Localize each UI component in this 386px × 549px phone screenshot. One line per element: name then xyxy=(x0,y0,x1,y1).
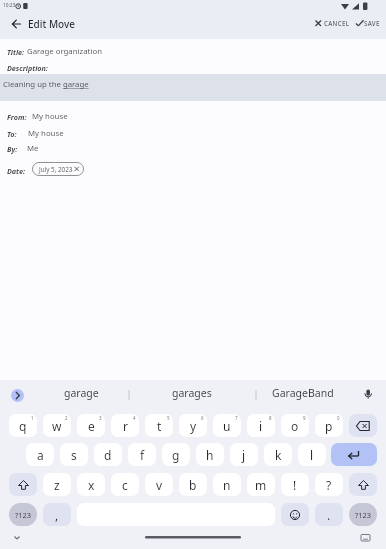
staticText: 2 xyxy=(65,415,68,421)
staticText: 3 xyxy=(99,415,102,421)
staticText: . xyxy=(327,507,331,523)
staticText: , xyxy=(55,507,59,523)
button[interactable]: y xyxy=(179,414,207,437)
staticText: r xyxy=(123,418,128,434)
button[interactable]: b xyxy=(179,473,207,496)
staticText: Cleaning up the garage xyxy=(3,79,89,90)
button[interactable] xyxy=(11,389,24,402)
button[interactable]: j xyxy=(230,443,258,466)
button[interactable]: July 5, 2023 xyxy=(32,162,84,176)
button[interactable]: g xyxy=(162,443,190,466)
button[interactable]: h xyxy=(196,443,224,466)
button[interactable]: f xyxy=(128,443,156,466)
staticText: Date: xyxy=(7,166,26,176)
staticText: July 5, 2023 xyxy=(39,165,73,174)
button[interactable]: ?123 xyxy=(349,503,377,526)
button[interactable] xyxy=(331,443,377,466)
staticText: e xyxy=(88,418,95,434)
staticText: garages xyxy=(172,386,212,400)
button[interactable] xyxy=(349,473,377,496)
staticText: Title: xyxy=(7,47,25,57)
button[interactable]: d xyxy=(94,443,122,466)
staticText: o xyxy=(291,418,299,434)
staticText: ?123 xyxy=(15,510,32,520)
staticText: 7 xyxy=(235,415,238,421)
staticText: ? xyxy=(326,477,332,493)
button[interactable]: i xyxy=(247,414,275,437)
button[interactable]: x xyxy=(77,473,105,496)
button[interactable]: k xyxy=(264,443,292,466)
button[interactable] xyxy=(8,14,28,34)
staticText: d xyxy=(104,447,112,463)
staticText: SAVE xyxy=(364,19,380,27)
button[interactable]: garage xyxy=(21,380,141,406)
button[interactable]: p xyxy=(315,414,343,437)
staticText: CANCEL xyxy=(324,19,350,27)
staticText: z xyxy=(54,477,60,493)
button[interactable] xyxy=(281,503,309,526)
button[interactable]: r xyxy=(111,414,139,437)
button[interactable]: m xyxy=(247,473,275,496)
staticText: 5 xyxy=(167,415,170,421)
staticText: 1 xyxy=(31,415,34,421)
button[interactable]: s xyxy=(60,443,88,466)
staticText: h xyxy=(206,447,214,463)
staticText: l xyxy=(310,447,314,463)
button[interactable]: SAVE xyxy=(352,17,368,25)
button[interactable]: ?123 xyxy=(9,503,37,526)
staticText: Garage organization xyxy=(27,46,102,57)
staticText: My house xyxy=(32,111,68,122)
staticText: a xyxy=(37,447,44,463)
button[interactable]: u xyxy=(213,414,241,437)
staticText: 8 xyxy=(269,415,272,421)
staticText: 9 xyxy=(303,415,306,421)
staticText: From: xyxy=(7,112,27,122)
staticText: w xyxy=(52,418,62,434)
button[interactable]: o xyxy=(281,414,309,437)
staticText: ! xyxy=(293,477,297,493)
button[interactable]: w xyxy=(43,414,71,437)
button[interactable]: v xyxy=(145,473,173,496)
staticText: 0 xyxy=(337,415,340,421)
staticText: garage xyxy=(64,386,99,400)
button[interactable]: q xyxy=(9,414,37,437)
button[interactable] xyxy=(349,414,377,437)
staticText: Description: xyxy=(7,63,48,73)
button[interactable]: c xyxy=(111,473,139,496)
staticText: ?123 xyxy=(355,510,372,520)
staticText: u xyxy=(223,418,231,434)
staticText: My house xyxy=(28,128,64,139)
staticText: c xyxy=(122,477,128,493)
staticText: By: xyxy=(7,144,18,154)
button[interactable]: . xyxy=(315,503,343,526)
staticText: y xyxy=(190,418,197,434)
button[interactable]: e xyxy=(77,414,105,437)
staticText: b xyxy=(189,477,197,493)
button[interactable]: ! xyxy=(281,473,309,496)
staticText: m xyxy=(255,477,267,493)
staticText: k xyxy=(275,447,282,463)
staticText: g xyxy=(172,447,180,463)
button[interactable]: n xyxy=(213,473,241,496)
button[interactable]: t xyxy=(145,414,173,437)
staticText: s xyxy=(71,447,77,463)
staticText: 10:23 xyxy=(3,2,16,9)
button[interactable]: l xyxy=(298,443,326,466)
staticText: i xyxy=(259,418,263,434)
button[interactable]: Cleaning up the garage xyxy=(0,74,386,101)
button[interactable]: GarageBand xyxy=(243,380,363,406)
button[interactable] xyxy=(9,473,37,496)
staticText: t xyxy=(157,418,162,434)
button[interactable]: ? xyxy=(315,473,343,496)
button[interactable]: a xyxy=(26,443,54,466)
button[interactable]: z xyxy=(43,473,71,496)
button[interactable]: garages xyxy=(132,380,252,406)
staticText: f xyxy=(140,447,145,463)
staticText: v xyxy=(156,477,163,493)
button[interactable]: CANCEL xyxy=(313,17,339,25)
staticText: p xyxy=(325,418,333,434)
staticText: j xyxy=(242,447,246,463)
staticText: q xyxy=(19,418,27,434)
button[interactable]: , xyxy=(43,503,71,526)
